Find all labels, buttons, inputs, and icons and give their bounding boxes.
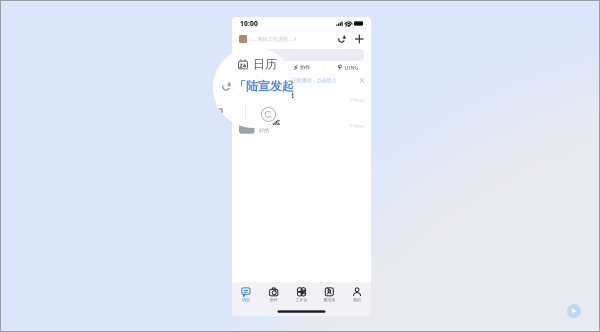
button[interactable]: DING: [325, 62, 371, 73]
staticText: 通讯录: [323, 297, 335, 302]
staticText: 正在通话: [291, 83, 319, 91]
staticText: 朱小志: [259, 118, 280, 126]
staticText: 消息: [242, 297, 250, 302]
button[interactable]: 协作: [278, 62, 324, 73]
staticText: 「陆宣发起的: [248, 76, 290, 85]
button[interactable]: 「陆宣发起的: [232, 74, 371, 87]
staticText: 下午4:47: [349, 123, 364, 129]
staticText: DING: [344, 64, 358, 71]
button[interactable]: [239, 49, 364, 61]
staticText: 协作: [300, 64, 310, 71]
staticText: 好的: [259, 127, 269, 134]
button[interactable]: 协作: [260, 287, 288, 302]
staticText: 工作台: [295, 297, 307, 302]
staticText: 正在通话，点击加入: [292, 77, 337, 84]
button[interactable]: 通讯录: [315, 287, 343, 302]
staticText: 10:00: [240, 19, 258, 28]
staticText: 收到，谢谢: [259, 101, 284, 108]
staticText: 日历: [253, 64, 263, 71]
button[interactable]: New chat: [355, 34, 364, 44]
staticText: 协作: [270, 297, 278, 302]
staticText: 下午5:02: [349, 97, 364, 103]
staticText: 项目沟通群: [259, 92, 294, 100]
button[interactable]: 日历: [232, 62, 278, 73]
staticText: 我的: [353, 297, 361, 302]
button[interactable]: 朱小志: [232, 113, 371, 139]
staticText: 日历: [253, 57, 277, 72]
button[interactable]: Calls: [337, 34, 347, 44]
button[interactable]: 消息: [232, 287, 260, 302]
staticText: 「陆宣发起的: [234, 79, 306, 94]
staticText: ……项目工作进度…: [249, 35, 291, 43]
button[interactable]: ……项目工作进度…: [239, 35, 296, 43]
button[interactable]: 我的: [343, 287, 371, 302]
button[interactable]: 项目沟通群: [232, 87, 371, 113]
button[interactable]: 工作台: [288, 287, 315, 302]
